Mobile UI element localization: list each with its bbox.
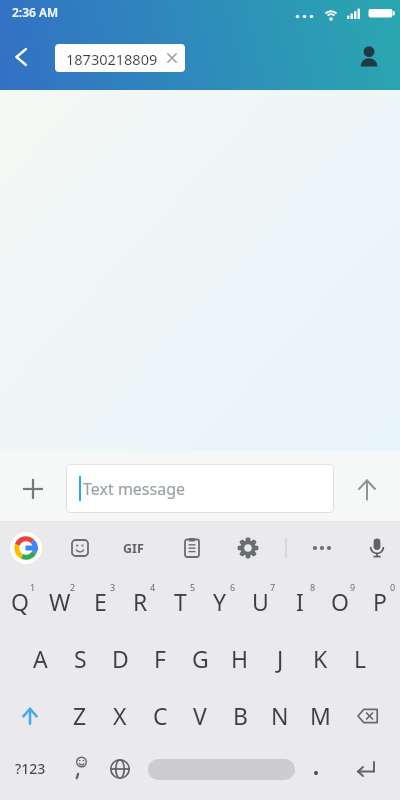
staticText: 8: [310, 581, 316, 593]
button[interactable]: M: [300, 687, 340, 744]
button[interactable]: Q: [0, 573, 40, 630]
button[interactable]: Y: [200, 573, 240, 630]
button[interactable]: V: [180, 687, 220, 744]
button[interactable]: [228, 528, 268, 568]
staticText: Y: [213, 586, 227, 617]
button[interactable]: C: [140, 687, 180, 744]
staticText: G: [192, 643, 209, 674]
button[interactable]: [17, 473, 49, 505]
button[interactable]: T: [160, 573, 200, 630]
staticText: Z: [73, 700, 87, 731]
staticText: H: [231, 643, 249, 674]
button[interactable]: 18730218809: [55, 44, 185, 72]
button[interactable]: GIF: [113, 528, 153, 568]
button[interactable]: [60, 528, 100, 568]
button[interactable]: G: [180, 630, 220, 687]
staticText: 2: [70, 581, 76, 593]
button[interactable]: [4, 40, 40, 76]
button[interactable]: Text message: [66, 464, 334, 513]
staticText: D: [112, 643, 129, 674]
staticText: T: [174, 586, 187, 617]
staticText: GIF: [123, 540, 144, 557]
button[interactable]: O: [320, 573, 360, 630]
button[interactable]: L: [340, 630, 380, 687]
staticText: F: [154, 643, 166, 674]
button[interactable]: F: [140, 630, 180, 687]
button[interactable]: [357, 528, 397, 568]
button[interactable]: [6, 528, 46, 568]
button[interactable]: X: [100, 687, 140, 744]
staticText: 1: [30, 581, 36, 593]
staticText: P: [373, 586, 387, 617]
staticText: 3: [110, 581, 116, 593]
button[interactable]: U: [240, 573, 280, 630]
staticText: L: [354, 643, 367, 674]
staticText: O: [331, 586, 349, 617]
staticText: U: [252, 586, 269, 617]
button[interactable]: [296, 749, 336, 789]
button[interactable]: [348, 696, 388, 736]
button[interactable]: [351, 474, 383, 506]
staticText: S: [74, 643, 87, 674]
staticText: Q: [11, 586, 29, 617]
staticText: I: [296, 586, 304, 617]
button[interactable]: [172, 528, 212, 568]
button[interactable]: R: [120, 573, 160, 630]
staticText: E: [94, 586, 107, 617]
staticText: X: [113, 700, 127, 731]
staticText: A: [33, 643, 48, 674]
button[interactable]: S: [60, 630, 100, 687]
button[interactable]: [60, 749, 100, 789]
staticText: 0: [390, 581, 396, 593]
staticText: M: [310, 700, 331, 731]
staticText: B: [233, 700, 248, 731]
staticText: 5: [190, 581, 196, 593]
staticText: 7: [270, 581, 276, 593]
staticText: 2:36 AM: [12, 4, 59, 20]
button[interactable]: ?123: [6, 740, 54, 796]
button[interactable]: P: [360, 573, 400, 630]
button[interactable]: A: [20, 630, 60, 687]
staticText: C: [153, 700, 168, 731]
staticText: 4: [150, 581, 156, 593]
staticText: ?123: [15, 759, 46, 778]
button[interactable]: B: [220, 687, 260, 744]
button[interactable]: H: [220, 630, 260, 687]
button[interactable]: J: [260, 630, 300, 687]
button[interactable]: [350, 38, 388, 76]
staticText: V: [193, 700, 207, 731]
button[interactable]: [346, 749, 386, 789]
staticText: K: [313, 643, 328, 674]
button[interactable]: [10, 696, 50, 736]
staticText: Text message: [83, 478, 186, 500]
button[interactable]: K: [300, 630, 340, 687]
staticText: N: [271, 700, 289, 731]
staticText: W: [49, 586, 71, 617]
button[interactable]: [100, 749, 140, 789]
staticText: 9: [350, 581, 356, 593]
button[interactable]: [148, 759, 295, 780]
button[interactable]: D: [100, 630, 140, 687]
staticText: 18730218809: [66, 49, 158, 69]
staticText: 6: [230, 581, 236, 593]
staticText: J: [277, 643, 284, 674]
staticText: R: [133, 586, 148, 617]
button[interactable]: I: [280, 573, 320, 630]
button[interactable]: E: [80, 573, 120, 630]
button[interactable]: [302, 528, 342, 568]
button[interactable]: N: [260, 687, 300, 744]
button[interactable]: Z: [60, 687, 100, 744]
button[interactable]: W: [40, 573, 80, 630]
